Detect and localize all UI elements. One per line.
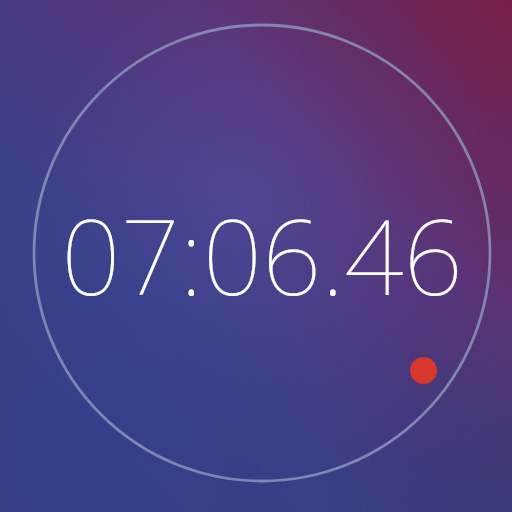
- staticText: 07:06.46: [61, 184, 463, 326]
- button[interactable]: 07:06.46: [0, 0, 512, 512]
- button[interactable]: Stopwatch running: [410, 357, 437, 384]
- button[interactable]: 07:06.46: [0, 0, 512, 512]
